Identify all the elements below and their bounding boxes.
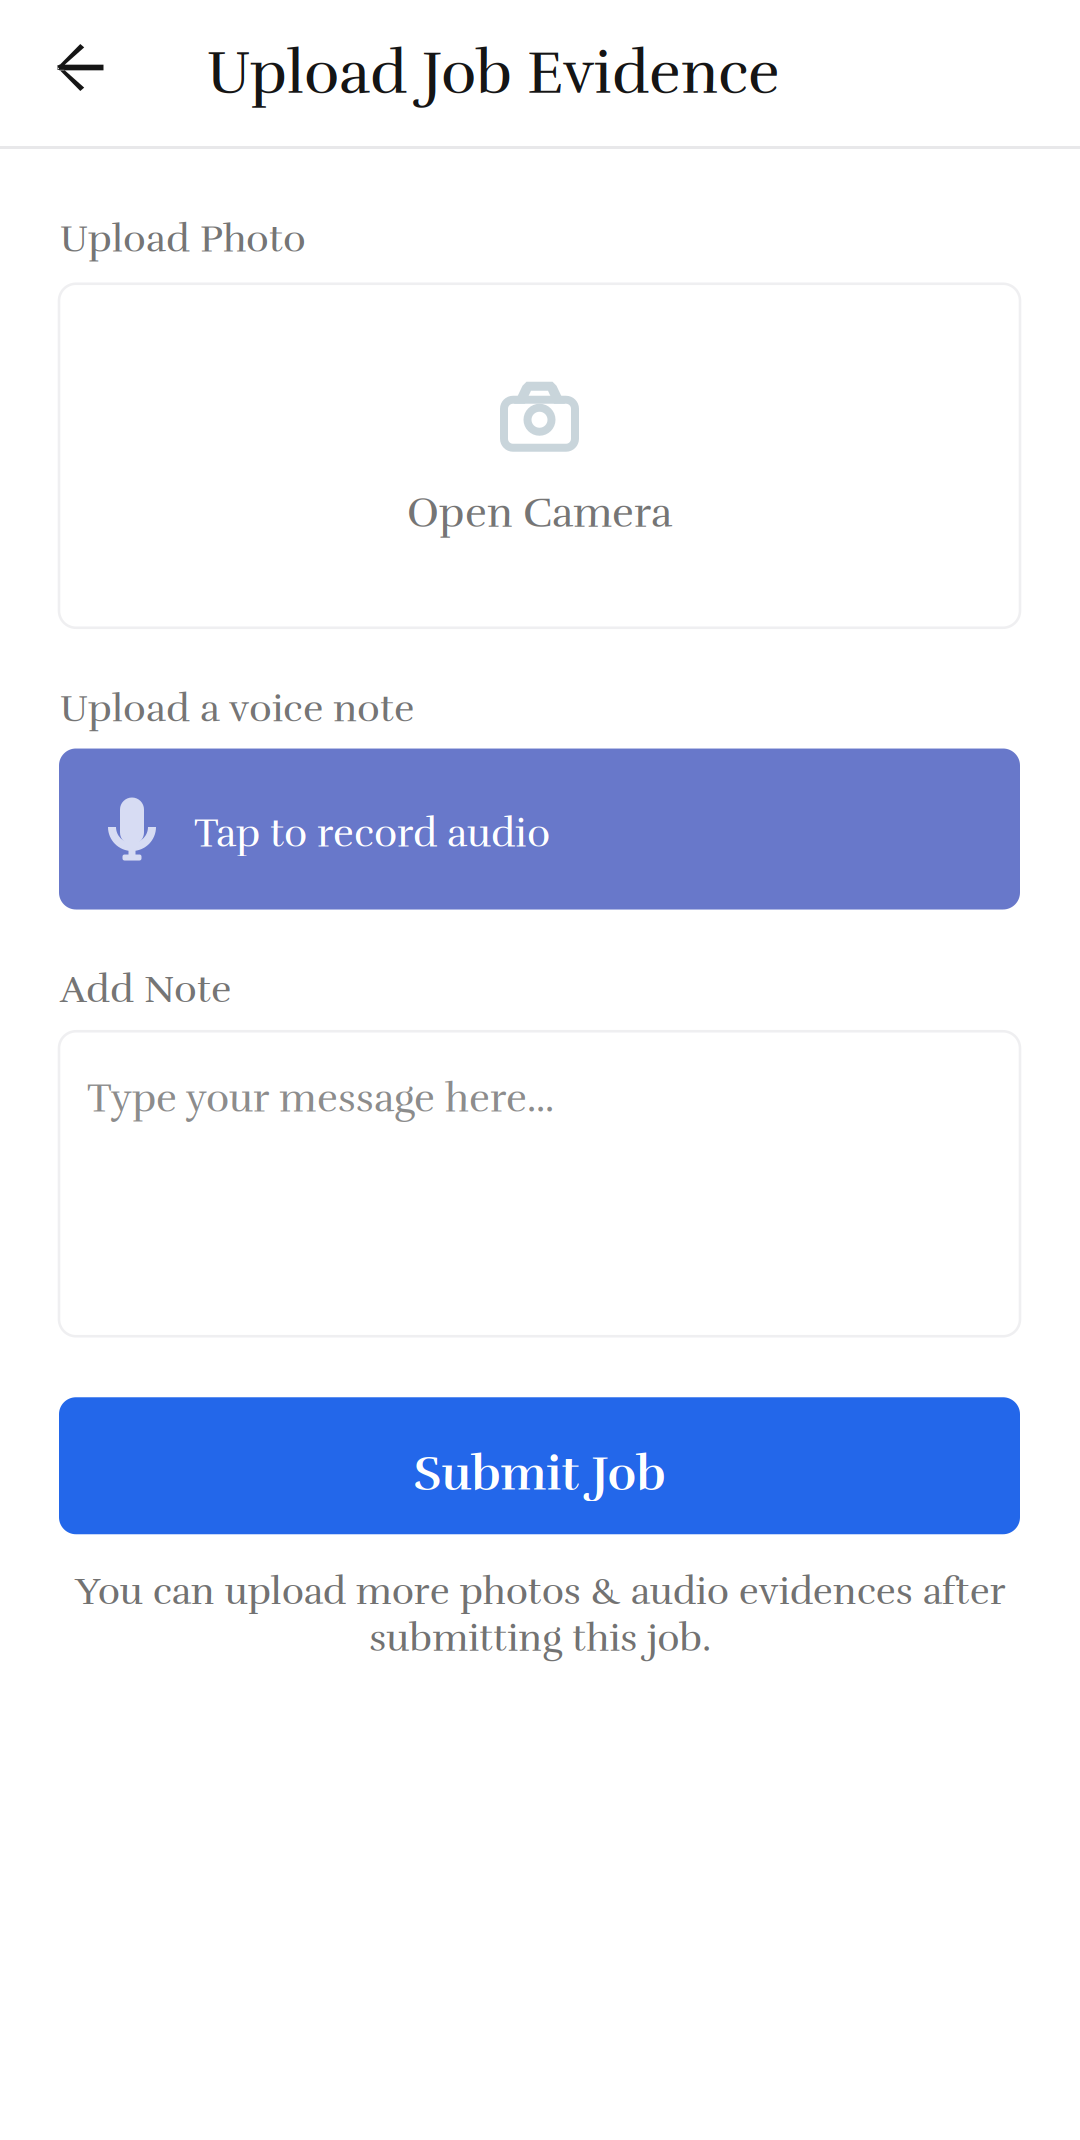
staticText: Add Note	[60, 965, 231, 1013]
staticText: Upload Job Evidence	[207, 36, 780, 110]
staticText: Open Camera	[407, 488, 672, 539]
button[interactable]: Tap to record audio	[59, 748, 1020, 909]
staticText: Type your message here...	[87, 1074, 554, 1123]
button[interactable]: Open Camera	[59, 284, 1020, 628]
button[interactable]: Submit Job	[59, 1397, 1020, 1534]
staticText: Upload Photo	[60, 215, 306, 263]
staticText: You can upload more photos & audio evide…	[75, 1568, 1004, 1662]
staticText: Upload a voice note	[60, 685, 414, 733]
button[interactable]: Back	[0, 0, 161, 146]
button[interactable]: Type your message here...	[59, 1031, 1020, 1336]
staticText: Submit Job	[413, 1444, 665, 1503]
staticText: Tap to record audio	[194, 809, 550, 858]
